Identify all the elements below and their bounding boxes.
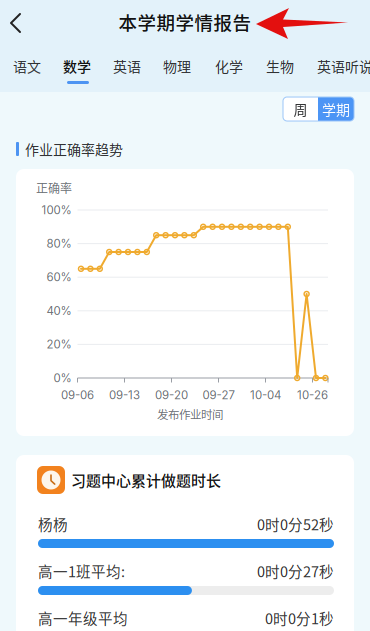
button[interactable]: 英语 [112, 47, 142, 85]
staticText: 20% [46, 337, 71, 351]
button[interactable]: 周 [283, 97, 318, 121]
staticText: 100% [41, 203, 71, 217]
staticText: 09-13 [109, 388, 140, 402]
staticText: 物理 [163, 56, 191, 76]
staticText: 作业正确率趋势 [25, 139, 123, 159]
staticText: 数学 [63, 56, 91, 76]
staticText: 化学 [215, 56, 243, 76]
staticText: 09-27 [202, 388, 234, 402]
staticText: 正确率 [36, 179, 72, 196]
staticText: 40% [46, 304, 71, 318]
staticText: 英语 [113, 56, 141, 76]
staticText: 杨杨 [38, 513, 68, 534]
staticText: 0时0分52秒 [257, 513, 334, 534]
staticText: 高一年级平均 [38, 607, 128, 628]
button[interactable]: 化学 [214, 47, 244, 85]
button[interactable]: 数学 [62, 47, 92, 85]
staticText: 60% [46, 270, 71, 284]
staticText: 80% [46, 237, 71, 251]
staticText: 09-20 [155, 388, 188, 402]
staticText: 发布作业时间 [157, 406, 223, 422]
staticText: 0% [53, 371, 71, 385]
staticText: 学期 [322, 99, 350, 119]
staticText: 0时0分27秒 [257, 560, 334, 581]
button[interactable]: 返回 [2, 6, 38, 40]
button[interactable]: 英语听说 [316, 47, 370, 85]
staticText: 10-04 [250, 388, 281, 402]
staticText: 本学期学情报告 [118, 9, 251, 35]
staticText: 英语听说 [317, 56, 370, 76]
staticText: 09-06 [61, 388, 94, 402]
staticText: 高一1班平均: [38, 560, 125, 581]
staticText: 0时0分1秒 [265, 607, 334, 628]
staticText: 习题中心累计做题时长 [71, 469, 221, 491]
staticText: 语文 [13, 56, 41, 76]
button[interactable]: 生物 [265, 47, 295, 85]
staticText: 10-26 [297, 388, 328, 402]
button[interactable]: 学期 [318, 97, 354, 121]
staticText: 周 [293, 99, 307, 119]
staticText: 生物 [266, 56, 294, 76]
button[interactable]: 物理 [162, 47, 192, 85]
button[interactable]: 语文 [12, 47, 42, 85]
